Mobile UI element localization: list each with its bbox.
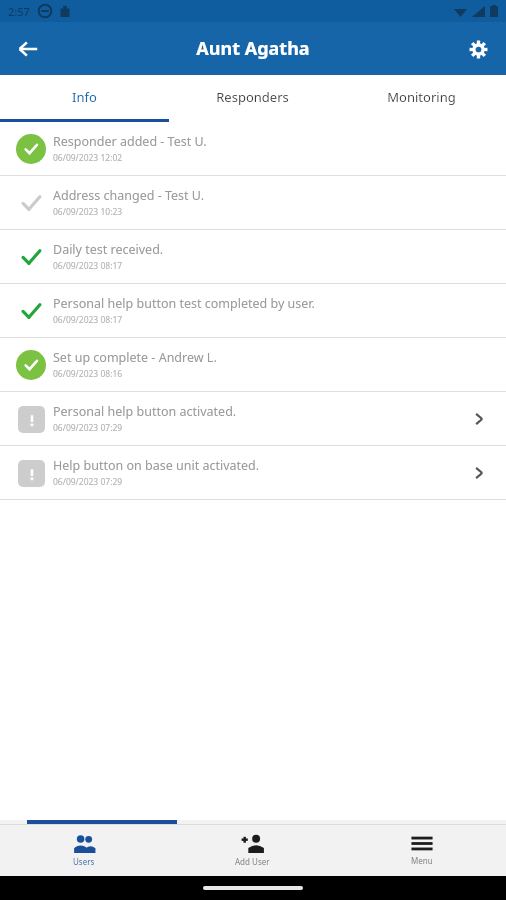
staticText: 06/09/2023 08:16 bbox=[53, 368, 123, 380]
staticText: 06/09/2023 08:17 bbox=[53, 314, 123, 326]
staticText: 2:57 bbox=[8, 4, 30, 19]
button[interactable]: Back bbox=[8, 29, 48, 69]
staticText: Responders bbox=[216, 88, 289, 106]
button[interactable]: Menu bbox=[337, 825, 506, 876]
button[interactable]: Info bbox=[0, 75, 168, 119]
button[interactable]: Daily test received. bbox=[0, 230, 506, 284]
button[interactable]: Users bbox=[0, 825, 168, 876]
staticText: Personal help button test completed by u… bbox=[53, 295, 315, 312]
button[interactable]: Address changed - Test U. bbox=[0, 176, 506, 230]
staticText: 06/09/2023 07:29 bbox=[53, 422, 123, 434]
staticText: Add User bbox=[235, 856, 270, 867]
staticText: Info bbox=[72, 88, 97, 106]
staticText: 06/09/2023 08:17 bbox=[53, 260, 123, 272]
staticText: Personal help button activated. bbox=[53, 403, 237, 420]
button[interactable]: Settings bbox=[458, 29, 498, 69]
staticText: Responder added - Test U. bbox=[53, 133, 207, 150]
staticText: Monitoring bbox=[387, 88, 456, 106]
button[interactable]: Set up complete - Andrew L. bbox=[0, 338, 506, 392]
button[interactable]: Monitoring bbox=[337, 75, 506, 119]
staticText: Help button on base unit activated. bbox=[53, 457, 260, 474]
staticText: Set up complete - Andrew L. bbox=[53, 349, 217, 366]
button[interactable]: Responder added - Test U. bbox=[0, 122, 506, 176]
staticText: Aunt Agatha bbox=[196, 36, 310, 61]
staticText: Daily test received. bbox=[53, 241, 164, 258]
button[interactable]: Personal help button test completed by u… bbox=[0, 284, 506, 338]
button[interactable]: Add User bbox=[168, 825, 337, 876]
staticText: 06/09/2023 07:29 bbox=[53, 476, 123, 488]
staticText: Menu bbox=[411, 855, 433, 866]
button[interactable]: Help button on base unit activated. bbox=[0, 446, 506, 500]
button[interactable]: Responders bbox=[168, 75, 337, 119]
staticText: Users bbox=[73, 856, 95, 867]
staticText: 06/09/2023 12:02 bbox=[53, 152, 123, 164]
staticText: Address changed - Test U. bbox=[53, 187, 205, 204]
button[interactable]: Personal help button activated. bbox=[0, 392, 506, 446]
staticText: 06/09/2023 10:23 bbox=[53, 206, 123, 218]
